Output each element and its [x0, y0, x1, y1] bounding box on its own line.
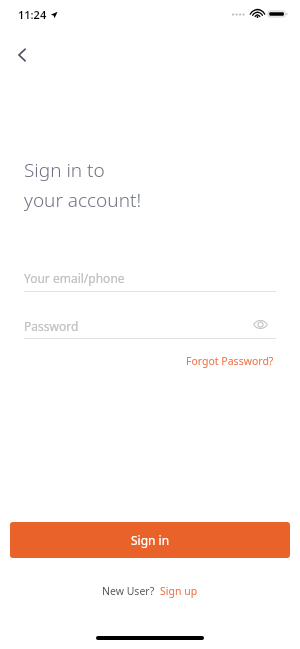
- button[interactable]: Show password: [246, 310, 274, 338]
- staticText: Password: [24, 318, 79, 334]
- button[interactable]: Password: [24, 312, 276, 339]
- staticText: Sign in: [131, 532, 170, 548]
- button[interactable]: Sign in: [10, 522, 290, 558]
- button[interactable]: Forgot Password?: [186, 354, 274, 368]
- staticText: Your email/phone: [24, 270, 125, 286]
- staticText: Sign up: [160, 584, 198, 598]
- staticText: 11:24: [18, 7, 47, 22]
- button[interactable]: Back: [4, 36, 42, 74]
- button[interactable]: Your email/phone: [24, 264, 276, 292]
- staticText: Forgot Password?: [186, 354, 274, 368]
- staticText: your account!: [24, 187, 142, 213]
- button[interactable]: Sign up: [160, 584, 198, 598]
- staticText: Sign in to: [24, 157, 105, 183]
- staticText: New User?: [102, 584, 155, 598]
